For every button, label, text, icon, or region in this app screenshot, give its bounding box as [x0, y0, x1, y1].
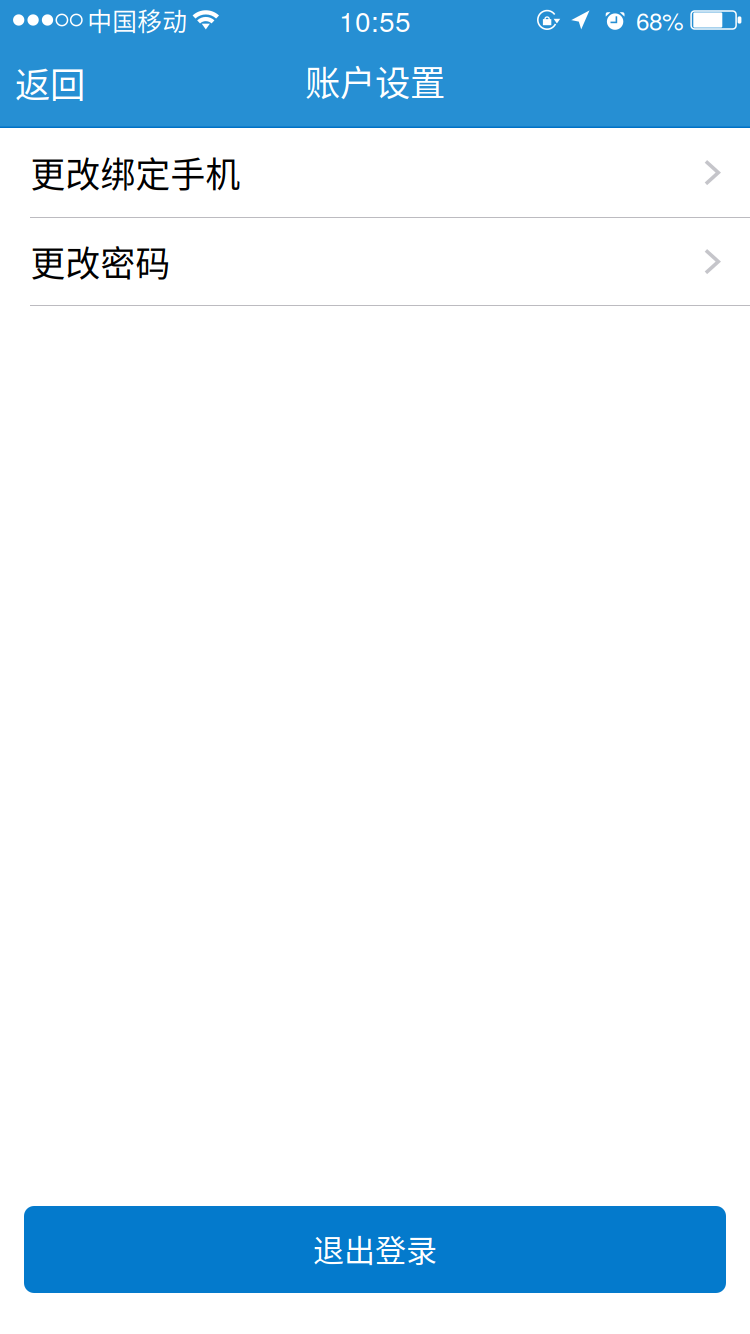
staticText: 退出登录 — [313, 1226, 437, 1271]
staticText: 返回 — [15, 57, 85, 108]
button[interactable]: 更改密码 — [0, 218, 750, 306]
staticText: 更改密码 — [30, 236, 170, 287]
button[interactable]: 返回 — [0, 43, 105, 122]
staticText: 68% — [636, 3, 684, 37]
button[interactable]: 更改绑定手机 — [0, 128, 750, 218]
button[interactable]: 退出登录 — [24, 1206, 726, 1293]
staticText: 中国移动 — [87, 2, 187, 38]
staticText: 账户设置 — [305, 55, 445, 106]
staticText: 10:55 — [339, 0, 411, 40]
staticText: 更改绑定手机 — [30, 147, 240, 198]
